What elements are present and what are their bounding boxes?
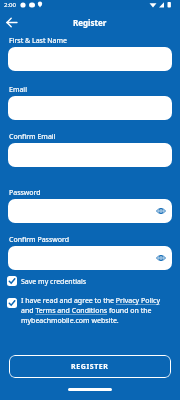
staticText: I have read and agree to the Privacy Pol…	[21, 296, 160, 306]
staticText: Confirm Password	[9, 235, 70, 245]
staticText: REGISTER	[71, 362, 109, 372]
button[interactable]	[8, 143, 172, 167]
staticText: Confirm Email	[9, 132, 56, 142]
staticText: mybeachmobile.com website.	[21, 316, 119, 326]
button[interactable]	[8, 96, 172, 120]
staticText: Save my credentials	[21, 277, 87, 287]
button[interactable]	[7, 298, 17, 308]
staticText: Email	[9, 85, 27, 95]
button[interactable]	[8, 199, 172, 223]
staticText: and Terms and Conditions found on the	[21, 306, 152, 316]
button[interactable]	[8, 47, 172, 71]
staticText: Password	[9, 188, 41, 198]
button[interactable]	[7, 276, 17, 286]
staticText: First & Last Name	[9, 36, 68, 46]
staticText: 2:00	[4, 1, 16, 9]
button[interactable]: REGISTER	[9, 355, 171, 378]
button[interactable]	[2, 15, 24, 31]
button[interactable]	[8, 246, 172, 270]
staticText: Register	[73, 17, 107, 28]
